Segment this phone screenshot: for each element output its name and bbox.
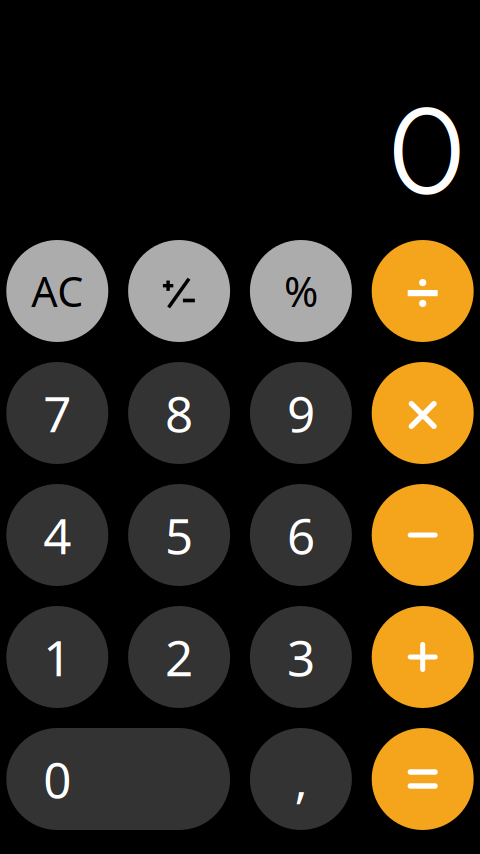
button[interactable]: %: [250, 240, 352, 342]
button[interactable]: ,: [250, 728, 352, 830]
button[interactable]: 9: [250, 362, 352, 464]
button[interactable]: AC: [6, 240, 108, 342]
button[interactable]: 0: [6, 728, 230, 830]
staticText: AC: [31, 264, 83, 318]
staticText: 5: [165, 502, 193, 568]
button[interactable]: Add: [372, 606, 474, 708]
staticText: 3: [287, 624, 315, 690]
staticText: 7: [43, 380, 71, 446]
staticText: 0: [388, 78, 466, 224]
button[interactable]: 1: [6, 606, 108, 708]
staticText: 1: [43, 624, 71, 690]
button[interactable]: Divide: [372, 240, 474, 342]
button[interactable]: Equals: [372, 728, 474, 830]
button[interactable]: 3: [250, 606, 352, 708]
button[interactable]: 8: [128, 362, 230, 464]
staticText: 2: [165, 624, 193, 690]
staticText: 6: [287, 502, 315, 568]
staticText: 0: [43, 746, 71, 812]
button[interactable]: 4: [6, 484, 108, 586]
button[interactable]: 7: [6, 362, 108, 464]
staticText: 8: [165, 380, 193, 446]
staticText: ,: [294, 746, 307, 812]
button[interactable]: 2: [128, 606, 230, 708]
staticText: 9: [287, 380, 315, 446]
button[interactable]: Plus Minus: [128, 240, 230, 342]
button[interactable]: Multiply: [372, 362, 474, 464]
button[interactable]: 5: [128, 484, 230, 586]
button[interactable]: 6: [250, 484, 352, 586]
staticText: 4: [43, 502, 71, 568]
staticText: %: [284, 264, 318, 318]
button[interactable]: Subtract: [372, 484, 474, 586]
